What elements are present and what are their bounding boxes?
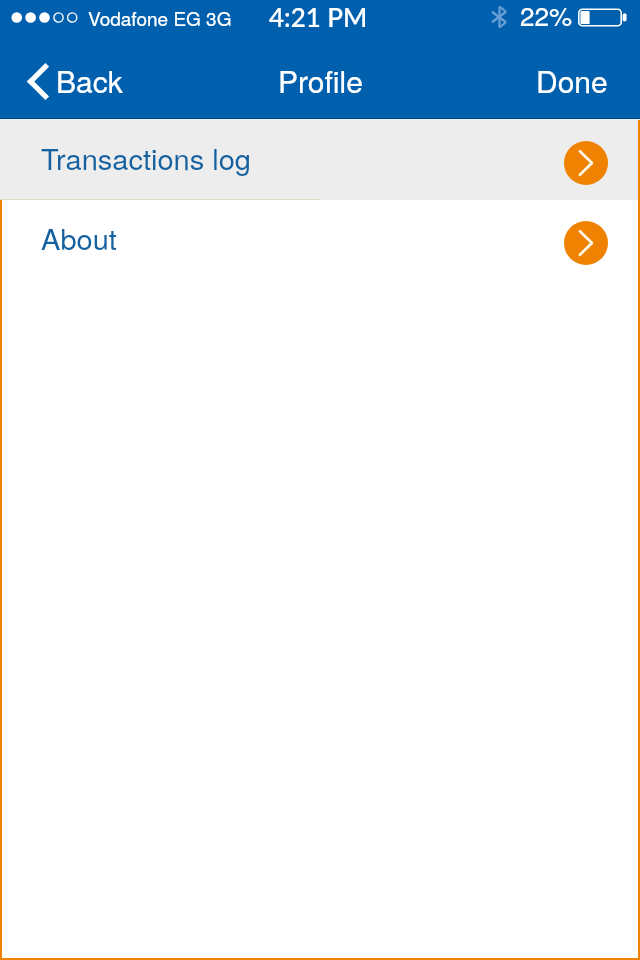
staticText: 22% xyxy=(520,0,573,32)
staticText: Back xyxy=(56,59,123,102)
button[interactable]: Back xyxy=(20,46,137,109)
staticText: Vodafone EG 3G xyxy=(88,4,232,31)
button[interactable]: Transactions log xyxy=(0,120,640,200)
other: Back xyxy=(28,64,48,99)
button[interactable]: Open About xyxy=(564,221,608,265)
button[interactable]: About xyxy=(0,200,640,280)
button[interactable]: Open Transactions log xyxy=(564,141,608,185)
button[interactable]: Done xyxy=(518,46,640,109)
staticText: Done xyxy=(536,59,608,102)
staticText: About xyxy=(41,217,117,259)
staticText: Transactions log xyxy=(41,137,251,179)
staticText: Profile xyxy=(278,59,363,102)
staticText: 4:21 PM xyxy=(269,1,368,32)
